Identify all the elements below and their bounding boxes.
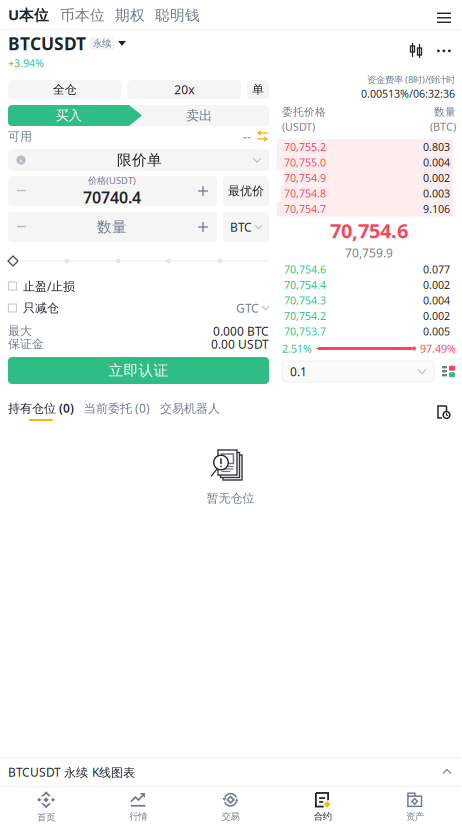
staticText: --	[243, 128, 251, 144]
button[interactable]: 交易机器人	[160, 401, 220, 421]
staticText: 0.003	[423, 186, 450, 200]
button[interactable]: 20x	[127, 80, 241, 99]
button[interactable]: 行情	[92, 787, 184, 827]
staticText: 单	[252, 82, 264, 97]
staticText: 70,759.9	[345, 245, 393, 261]
staticText: 卖出	[186, 107, 212, 124]
staticText: 行情	[129, 811, 147, 822]
staticText: 0.002	[423, 278, 450, 292]
button[interactable]: Transfer	[257, 131, 269, 142]
staticText: BTC	[230, 219, 252, 235]
staticText: 70,755.2	[284, 140, 326, 154]
button[interactable]: GTC	[236, 302, 269, 314]
staticText: 2.51%	[282, 341, 312, 356]
button[interactable]: 全仓	[8, 80, 121, 99]
button[interactable]: BTC	[223, 212, 269, 242]
staticText: 0.005	[423, 324, 450, 338]
staticText: +3.94%	[8, 56, 44, 70]
button[interactable]: Chart	[403, 43, 429, 59]
staticText: 最优价	[228, 184, 264, 198]
staticText: 资金费率 (8时)/倒计时	[367, 73, 455, 86]
staticText: 9.106	[423, 202, 450, 216]
button[interactable]: 买入	[8, 105, 129, 126]
staticText: 70,754.8	[284, 186, 326, 200]
staticText: 70,755.0	[284, 155, 326, 169]
staticText: 价格(USDT)	[88, 174, 136, 187]
button[interactable]: U本位	[0, 5, 55, 24]
staticText: 数量	[97, 218, 127, 236]
staticText: 保证金	[8, 337, 44, 351]
button[interactable]: 最优价	[223, 176, 269, 206]
staticText: 97.49%	[420, 341, 456, 356]
staticText: 0.004	[423, 155, 450, 169]
staticText: 70,753.7	[284, 324, 326, 338]
staticText: 限价单	[117, 151, 162, 169]
button[interactable]: 首页	[0, 787, 92, 827]
button[interactable]: 资产	[369, 787, 461, 827]
staticText: 永续	[93, 38, 111, 49]
staticText: 70,754.2	[284, 309, 326, 323]
staticText: 0.002	[423, 171, 450, 185]
staticText: 0.000 BTC	[213, 323, 269, 339]
button[interactable]: 聪明钱	[150, 6, 205, 24]
staticText: BTCUSDT	[8, 32, 86, 55]
staticText: (USDT)	[282, 119, 315, 134]
staticText: 持有仓位 (0)	[8, 400, 74, 416]
staticText: 委托价格	[282, 105, 326, 118]
staticText: 止盈/止损	[23, 278, 75, 294]
button[interactable]: Order history	[437, 405, 461, 421]
staticText: 期权	[115, 6, 145, 24]
staticText: 0.00 USDT	[211, 336, 269, 352]
staticText: 70,754.6	[330, 217, 408, 244]
staticText: 买入	[55, 107, 81, 124]
staticText: GTC	[236, 300, 259, 316]
staticText: 全仓	[53, 82, 77, 97]
button[interactable]: 0.1	[282, 361, 434, 382]
staticText: 70,754.3	[284, 293, 326, 307]
staticText: 0.002	[423, 309, 450, 323]
staticText: 聪明钱	[155, 6, 200, 24]
staticText: 70,754.6	[284, 262, 326, 276]
staticText: 70,754.9	[284, 171, 326, 185]
staticText: 最大	[8, 324, 32, 338]
staticText: 70,754.7	[284, 202, 326, 216]
button[interactable]: 当前委托 (0)	[84, 400, 160, 421]
button[interactable]: 交易	[184, 787, 277, 827]
button[interactable]: 币本位	[55, 6, 110, 24]
staticText: 合约	[314, 811, 332, 822]
staticText: 当前委托 (0)	[84, 400, 150, 416]
button[interactable]: 合约	[277, 787, 369, 827]
button[interactable]: Menu	[437, 10, 461, 24]
staticText: (BTC)	[430, 119, 456, 134]
staticText: 暂无仓位	[206, 491, 254, 506]
button[interactable]: Order book layout	[441, 365, 456, 377]
button[interactable]: 限价单	[8, 149, 269, 171]
button[interactable]: 卖出	[129, 105, 269, 126]
staticText: 0.1	[290, 363, 307, 379]
button[interactable]: BTCUSDT	[0, 32, 126, 70]
staticText: 首页	[37, 812, 55, 823]
staticText: U本位	[8, 5, 49, 24]
button[interactable]: 期权	[110, 6, 150, 24]
staticText: 只减仓	[23, 301, 59, 315]
staticText: 70740.4	[83, 187, 141, 208]
staticText: 数量	[434, 105, 456, 118]
button[interactable]: More	[429, 49, 461, 52]
staticText: 20x	[174, 81, 194, 97]
staticText: 币本位	[60, 6, 105, 24]
staticText: 交易机器人	[160, 401, 220, 416]
staticText: 交易	[221, 811, 239, 822]
button[interactable]: 单	[247, 80, 269, 99]
staticText: 0.004	[423, 293, 450, 307]
button[interactable]: BTCUSDT 永续 K线图表	[0, 758, 461, 786]
button[interactable]: 立即认证	[8, 357, 269, 384]
button[interactable]: 只减仓	[8, 302, 59, 314]
staticText: 立即认证	[108, 361, 168, 379]
button[interactable]: 持有仓位 (0)	[0, 400, 84, 421]
staticText: 资产	[406, 811, 424, 822]
staticText: 0.00513%/06:32:36	[361, 87, 455, 101]
staticText: 0.077	[423, 262, 450, 276]
staticText: 0.803	[423, 140, 450, 154]
staticText: 70,754.4	[284, 278, 326, 292]
button[interactable]: 止盈/止损	[8, 280, 269, 292]
